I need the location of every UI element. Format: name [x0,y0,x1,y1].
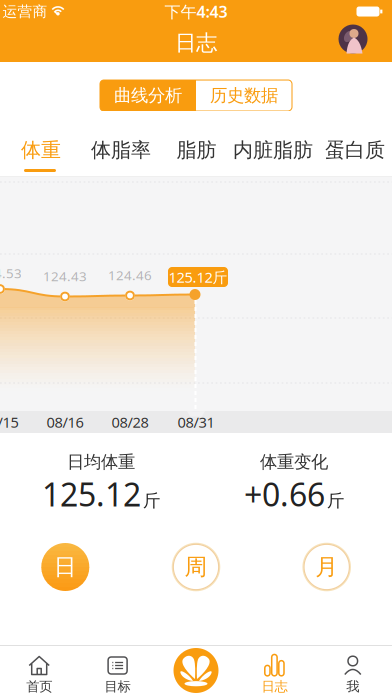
button[interactable]: 蛋白质 [325,138,385,162]
staticText: +0.66 [244,473,325,515]
button[interactable]: 首页 [9,646,69,695]
staticText: 斤 [327,490,344,511]
button[interactable]: 内脏脂肪 [233,138,313,162]
staticText: 日志 [175,30,217,56]
staticText: 周 [184,553,207,581]
staticText: 124.43 [43,267,87,285]
button[interactable]: 曲线分析 [100,80,196,111]
button[interactable]: 体脂率 [91,138,151,162]
staticText: 运营商 [2,2,47,20]
button[interactable]: 脂肪 [176,138,216,162]
button[interactable]: 体重 [21,138,61,162]
staticText: 目标 [105,678,131,695]
staticText: 125.12 [42,473,141,515]
staticText: 首页 [26,678,52,695]
staticText: 08/16 [46,412,83,432]
staticText: 125.12斤 [168,267,227,287]
button[interactable]: 目标 [88,646,148,695]
staticText: 日 [54,553,77,581]
staticText: 体脂率 [91,138,151,162]
staticText: 月 [315,553,338,581]
staticText: 08/15 [0,412,18,432]
button[interactable]: 个人资料 [338,24,367,53]
staticText: 蛋白质 [325,138,385,162]
staticText: 历史数据 [210,85,278,106]
staticText: 我 [346,678,359,695]
staticText: 内脏脂肪 [233,138,313,162]
staticText: 124.46 [108,266,152,284]
staticText: 08/28 [111,412,148,432]
button[interactable]: 日 [41,543,89,591]
staticText: 日均体重 [67,451,135,473]
button[interactable]: 周 [172,543,220,591]
staticText: 08/31 [177,412,214,432]
staticText: 124.53 [0,264,22,282]
button[interactable]: 测量 [173,648,218,693]
staticText: 斤 [143,490,160,511]
staticText: 日志 [261,678,287,695]
button[interactable]: 月 [303,543,351,591]
staticText: 下午4:43 [164,1,227,22]
staticText: 体重 [21,138,61,162]
staticText: 体重变化 [260,451,328,473]
button[interactable]: 历史数据 [196,80,292,111]
staticText: 脂肪 [176,138,216,162]
button[interactable]: 我 [323,646,383,695]
button[interactable]: 日志 [244,646,304,695]
staticText: 曲线分析 [114,85,182,106]
